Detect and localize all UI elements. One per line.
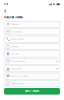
staticText: Additional notes	[11, 82, 24, 85]
staticText: Phone number	[11, 38, 24, 40]
button[interactable]: Full name	[4, 21, 60, 27]
button[interactable]: Preferred date	[4, 58, 60, 64]
button[interactable]: Submit Request	[4, 88, 60, 95]
staticText: 9:41	[4, 3, 8, 5]
button[interactable]: Additional notes	[4, 80, 60, 87]
button[interactable]: Phone number	[4, 36, 60, 42]
staticText: Request Access	[4, 16, 22, 19]
staticText: Company	[11, 45, 19, 48]
staticText: Access level	[11, 68, 21, 70]
staticText: Submit Request	[24, 90, 39, 92]
staticText: Job title	[11, 53, 18, 55]
staticText: Full name	[11, 23, 19, 25]
button[interactable]: Company	[4, 43, 60, 50]
button[interactable]: Job title	[4, 51, 60, 57]
staticText: Preferred date	[11, 60, 25, 62]
staticText: Reason for request	[11, 75, 29, 77]
button[interactable]: Back	[4, 9, 7, 13]
button[interactable]: Email address	[4, 29, 60, 35]
button[interactable]: Access level	[4, 66, 60, 72]
button[interactable]: Reason for request	[4, 73, 60, 79]
staticText: Email address	[11, 31, 23, 33]
